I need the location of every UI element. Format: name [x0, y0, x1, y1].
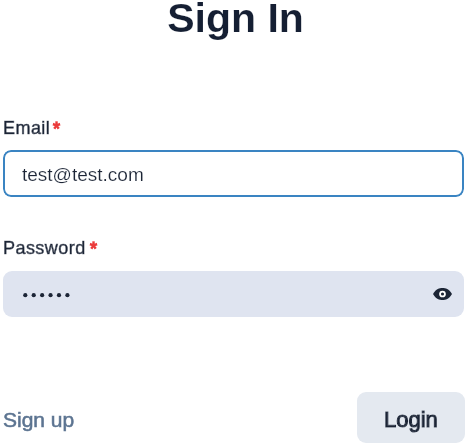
- staticText: test@test.com: [22, 164, 144, 185]
- button[interactable]: Login: [357, 392, 465, 443]
- staticText: *: [53, 119, 61, 139]
- staticText: Login: [384, 407, 438, 432]
- staticText: Email: [3, 118, 51, 138]
- staticText: Password: [3, 238, 86, 258]
- staticText: Sign up: [3, 408, 75, 431]
- staticText: Login: [384, 407, 438, 432]
- button[interactable]: Show password: [3, 271, 464, 317]
- staticText: Email: [3, 118, 51, 138]
- button[interactable]: Sign up: [3, 408, 75, 431]
- staticText: *: [90, 239, 98, 259]
- staticText: *: [90, 239, 98, 259]
- staticText: Sign In: [2, 0, 467, 41]
- button[interactable]: test@test.com: [3, 150, 464, 197]
- staticText: Password: [3, 238, 86, 258]
- button[interactable]: Show password: [418, 271, 464, 317]
- staticText: Sign up: [3, 408, 75, 431]
- staticText: *: [53, 119, 61, 139]
